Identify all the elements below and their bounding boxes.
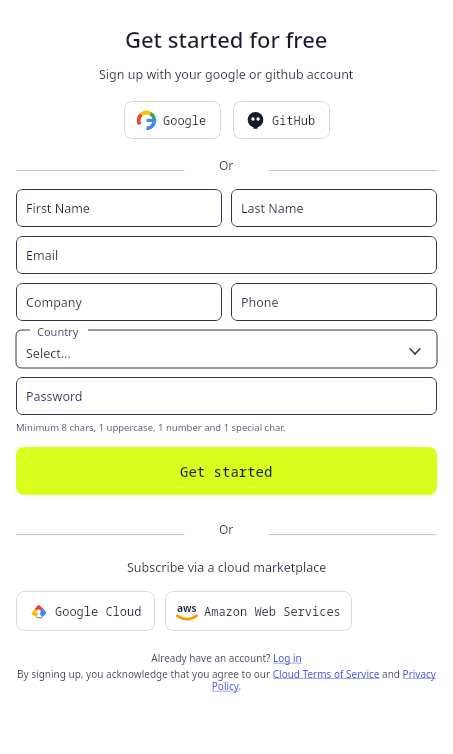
staticText: Or xyxy=(219,157,234,173)
button[interactable]: Company xyxy=(16,283,222,321)
staticText: Email xyxy=(26,247,59,264)
staticText: First Name xyxy=(26,200,90,217)
button[interactable]: Google Cloud xyxy=(16,591,155,631)
button[interactable]: Phone xyxy=(231,283,437,321)
button[interactable]: Last Name xyxy=(231,189,437,227)
button[interactable]: By signing up, you acknowledge that you … xyxy=(16,667,437,693)
staticText: Password xyxy=(26,388,83,405)
staticText: Sign up with your google or github accou… xyxy=(99,66,354,83)
staticText: Select... xyxy=(26,345,71,362)
button[interactable]: Country xyxy=(16,330,437,368)
staticText: Google Cloud xyxy=(55,603,142,619)
staticText: Amazon Web Services xyxy=(204,603,341,619)
staticText: Last Name xyxy=(241,200,304,217)
staticText: Get started xyxy=(180,462,273,481)
staticText: Subscribe via a cloud marketplace xyxy=(127,559,327,576)
staticText: Country xyxy=(37,324,79,339)
staticText: Get started for free xyxy=(125,24,328,54)
staticText: Google xyxy=(163,112,207,128)
staticText: aws xyxy=(177,601,197,615)
staticText: GitHub xyxy=(272,112,316,128)
staticText: Phone xyxy=(241,294,279,311)
button[interactable]: First Name xyxy=(16,189,222,227)
button[interactable]: Email xyxy=(16,236,437,274)
staticText: Or xyxy=(219,521,234,537)
button[interactable]: GitHub xyxy=(233,101,330,139)
staticText: Company xyxy=(26,294,82,311)
button[interactable]: Password xyxy=(16,377,437,415)
button[interactable]: aws xyxy=(165,591,352,631)
button[interactable]: Google xyxy=(124,101,221,139)
staticText: Minimum 8 chars, 1 uppercase, 1 number a… xyxy=(16,421,286,434)
button[interactable]: Already have an account? Log in xyxy=(16,651,437,665)
button[interactable]: Get started xyxy=(16,447,437,495)
